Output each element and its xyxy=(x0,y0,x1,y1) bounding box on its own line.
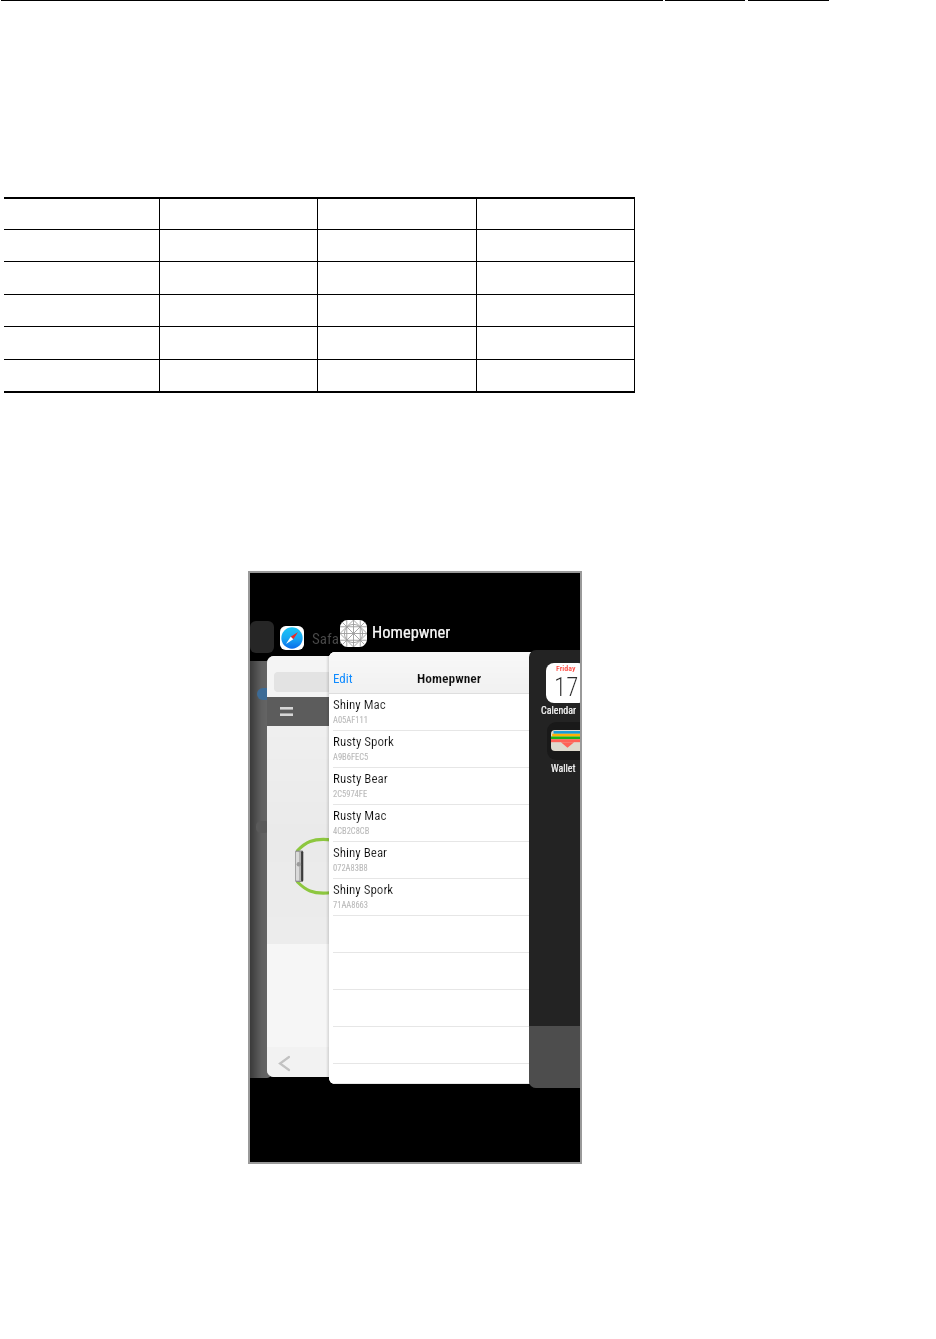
button[interactable]: Edit xyxy=(329,652,570,1084)
staticText: Wallet xyxy=(551,763,576,775)
button[interactable]: Safari xyxy=(280,626,304,650)
button[interactable]: Rusty Bear xyxy=(329,768,570,805)
staticText: 17 xyxy=(554,673,579,702)
button[interactable]: Menu xyxy=(280,707,293,716)
staticText: 2C5974FE xyxy=(333,789,368,799)
staticText: Homepwner xyxy=(417,670,482,686)
staticText: Calendar xyxy=(541,705,577,717)
staticText: Shiny Spork xyxy=(333,882,394,897)
staticText: 072A83B8 xyxy=(333,863,368,873)
button[interactable]: Shiny Bear xyxy=(329,842,570,879)
staticText: Rusty Bear xyxy=(333,771,388,786)
staticText: Friday xyxy=(556,664,576,673)
staticText: 4CB2C8CB xyxy=(333,826,370,836)
button[interactable]: Edit xyxy=(333,671,353,686)
button[interactable]: Calendar xyxy=(546,663,580,703)
staticText: Rusty Mac xyxy=(333,808,387,823)
staticText: Homepwner xyxy=(372,623,451,642)
button[interactable]: Shiny Mac xyxy=(329,694,570,731)
button[interactable]: Back xyxy=(280,1057,289,1070)
button[interactable]: Edit xyxy=(329,652,570,693)
staticText: 71AA8663 xyxy=(333,900,368,910)
button[interactable]: Wallet xyxy=(551,730,580,751)
button[interactable]: Shiny Spork xyxy=(329,879,570,916)
staticText: A9B6FEC5 xyxy=(333,752,369,762)
staticText: Shiny Mac xyxy=(333,697,386,712)
staticText: Safari xyxy=(312,630,347,648)
staticText: Rusty Spork xyxy=(333,734,394,749)
staticText: A05AF111 xyxy=(333,715,368,725)
button[interactable]: Homepwner xyxy=(340,620,367,647)
button[interactable]: Rusty Spork xyxy=(329,731,570,768)
staticText: Shiny Bear xyxy=(333,845,388,860)
button[interactable]: Safari app card xyxy=(267,656,387,1077)
button[interactable]: Rusty Mac xyxy=(329,805,570,842)
